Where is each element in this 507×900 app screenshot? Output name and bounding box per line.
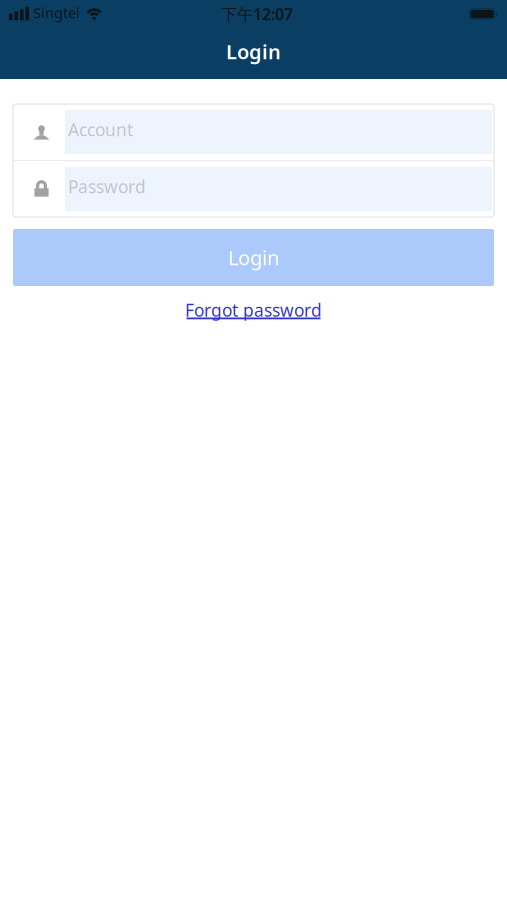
staticText: Forgot password (185, 298, 322, 321)
staticText: Password (68, 175, 146, 198)
staticText: 下午12:07 (221, 3, 293, 25)
button[interactable]: Password (13, 161, 494, 217)
staticText: Login (226, 38, 281, 65)
button[interactable]: Login (13, 229, 494, 286)
button[interactable]: Forgot password (174, 295, 332, 325)
staticText: Account (68, 118, 133, 141)
button[interactable]: Account (13, 104, 494, 160)
staticText: Singtel (33, 3, 80, 22)
staticText: Login (228, 244, 279, 271)
